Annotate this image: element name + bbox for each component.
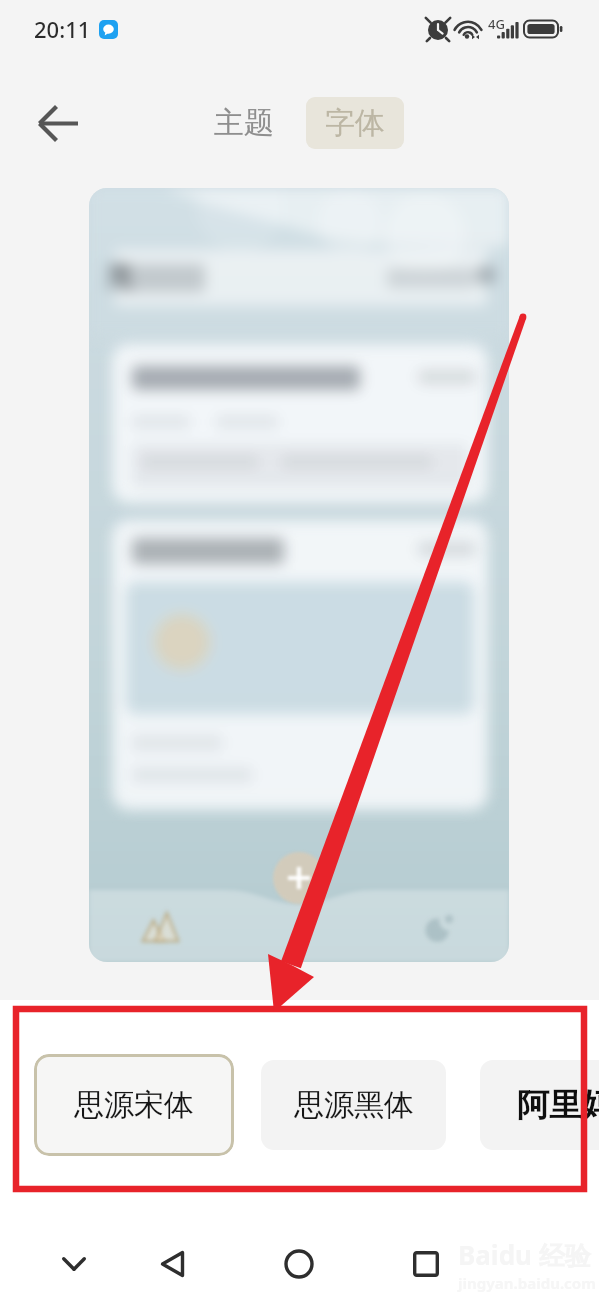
button[interactable]: 阿里妈妈 [480,1060,599,1150]
button[interactable]: Add [273,852,325,904]
button[interactable]: Recents [394,1232,458,1296]
staticText: 字体 [325,104,385,142]
staticText: 思源宋体 [74,1086,194,1124]
staticText: 阿里妈妈 [517,1085,599,1125]
staticText: 黑 [106,260,133,294]
button[interactable]: 思源宋体 [34,1054,234,1156]
button[interactable]: Wallpaper [138,905,182,949]
button[interactable]: Home [267,1232,331,1296]
button[interactable]: Back [26,94,90,152]
staticText: 20:11 [34,14,91,44]
button[interactable]: 思源黑体 [261,1060,446,1150]
staticText: 主题 [214,104,274,142]
staticText: jingyan.baidu.com [458,1273,596,1293]
button[interactable]: Night mode [418,905,462,949]
staticText: 4G [488,15,505,33]
staticText: 思源黑体 [294,1086,414,1124]
button[interactable]: Hide keyboard [42,1232,106,1296]
button[interactable]: 字体 [306,97,404,149]
button[interactable]: 主题 [202,94,286,152]
staticText: Baidu 经验 [458,1237,591,1273]
button[interactable]: Font preview [89,188,509,962]
button[interactable]: Back [140,1232,204,1296]
